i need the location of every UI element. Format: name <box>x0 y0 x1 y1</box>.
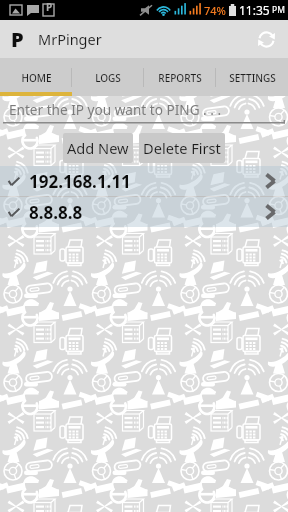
staticText: 11:35 <box>239 2 270 18</box>
button[interactable]: 192.168.1.11 <box>0 166 288 196</box>
button[interactable]: Enter the IP you want to PING . . . <box>3 96 285 122</box>
button[interactable]: Delete First <box>139 133 225 163</box>
staticText: P <box>11 26 24 53</box>
staticText: SETTINGS <box>229 71 276 85</box>
staticText: Enter the IP you want to PING . . . <box>9 100 222 119</box>
staticText: PM <box>272 4 285 16</box>
staticText: LOGS <box>95 71 121 85</box>
staticText: Add New <box>67 138 129 158</box>
staticText: 192.168.1.11 <box>29 170 131 193</box>
staticText: Delete First <box>143 138 221 158</box>
staticText: MrPinger <box>38 29 102 49</box>
staticText: 74% <box>204 3 226 18</box>
button[interactable]: LOGS <box>72 58 144 92</box>
button[interactable]: Refresh <box>251 24 281 54</box>
staticText: P <box>46 0 53 14</box>
button[interactable]: HOME <box>0 58 72 92</box>
staticText: 8.8.8.8 <box>29 201 83 224</box>
button[interactable]: 8.8.8.8 <box>0 197 288 227</box>
button[interactable]: REPORTS <box>144 58 216 92</box>
button[interactable]: Add New <box>63 133 133 163</box>
staticText: HOME <box>21 71 52 85</box>
button[interactable]: SETTINGS <box>216 58 288 92</box>
staticText: REPORTS <box>158 71 202 85</box>
